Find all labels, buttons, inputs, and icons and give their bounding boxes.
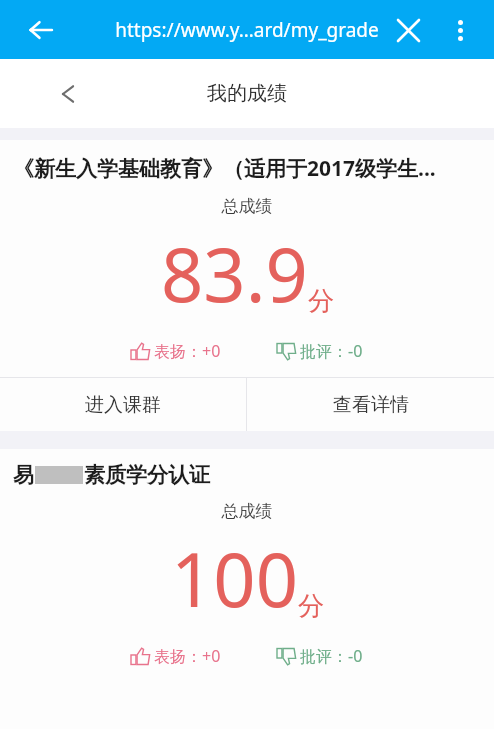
staticText: https://www.y…ard/my_grade — [115, 17, 379, 43]
staticText: 分 — [298, 590, 324, 623]
staticText: 83.9 — [161, 223, 308, 324]
staticText: 100 — [171, 528, 298, 629]
button[interactable]: 查看详情 — [247, 378, 494, 431]
staticText: 易 — [13, 462, 34, 488]
staticText: 总成绩 — [0, 501, 494, 522]
button[interactable]: 《新生入学基础教育》（适用于2017级学生... — [0, 140, 494, 196]
staticText: 进入课群 — [85, 393, 161, 417]
staticText: 《新生入学基础教育》（适用于2017级学生... — [13, 154, 436, 183]
staticText: 表扬：+0 — [154, 645, 221, 667]
button[interactable]: 表扬：+0 — [127, 338, 225, 364]
button[interactable]: 批评：-0 — [273, 338, 367, 364]
staticText: 素质学分认证 — [84, 462, 210, 488]
button[interactable]: 批评：-0 — [273, 643, 367, 669]
button[interactable]: 易 — [0, 449, 494, 501]
button[interactable]: More options — [440, 10, 480, 50]
button[interactable]: 进入课群 — [0, 378, 246, 431]
button[interactable]: 表扬：+0 — [127, 643, 225, 669]
staticText: 批评：-0 — [300, 645, 363, 667]
staticText: 批评：-0 — [300, 340, 363, 362]
staticText: 总成绩 — [0, 196, 494, 217]
button[interactable]: Navigate back — [46, 72, 90, 116]
staticText: 查看详情 — [333, 393, 409, 417]
staticText: 表扬：+0 — [154, 340, 221, 362]
button[interactable]: Close — [386, 8, 430, 52]
staticText: 分 — [308, 285, 334, 318]
button[interactable]: Back — [18, 7, 64, 53]
staticText: 我的成绩 — [207, 81, 287, 106]
